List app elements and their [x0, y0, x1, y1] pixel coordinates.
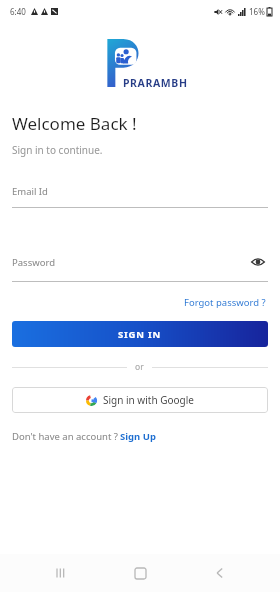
button[interactable]: Recents	[40, 554, 80, 592]
button[interactable]: Back	[200, 554, 240, 592]
button[interactable]: Sign Up	[118, 429, 158, 444]
staticText: Sign Up	[120, 430, 156, 443]
staticText: Sign in to continue.	[12, 143, 103, 157]
button[interactable]: Forgot password ?	[182, 294, 268, 311]
staticText: SIGN IN	[118, 328, 162, 341]
staticText: Password	[12, 256, 55, 269]
button[interactable]: SIGN IN	[12, 321, 268, 347]
staticText: or	[135, 361, 144, 373]
staticText: PRARAMBH	[123, 76, 188, 90]
staticText: Email Id	[12, 185, 48, 198]
staticText: Welcome Back !	[12, 112, 137, 135]
staticText: Forgot password ?	[184, 296, 266, 309]
button[interactable]: Sign in with Google	[12, 387, 268, 413]
staticText: 16%	[249, 6, 265, 17]
staticText: Don't have an account ?	[12, 430, 118, 443]
button[interactable]: Show password	[248, 252, 268, 272]
button[interactable]: Home	[120, 554, 160, 592]
staticText: Sign in with Google	[103, 393, 194, 407]
staticText: 6:40	[10, 6, 26, 17]
